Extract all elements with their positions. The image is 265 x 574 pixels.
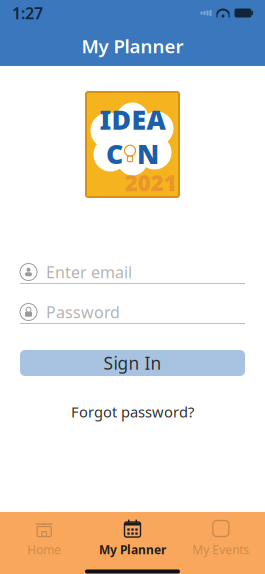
staticText: Password <box>46 301 120 323</box>
staticText: My Planner <box>99 541 166 557</box>
staticText: IDEA <box>99 102 165 137</box>
button[interactable]: Sign In <box>20 350 245 376</box>
button[interactable]: My Planner <box>88 515 177 561</box>
staticText: My Planner <box>81 34 183 58</box>
staticText: N <box>137 136 159 171</box>
staticText: Home <box>27 541 61 557</box>
staticText: Forgot password? <box>71 402 194 421</box>
button[interactable]: Forgot password? <box>63 398 202 425</box>
staticText: 1:27 <box>12 2 43 24</box>
staticText: C <box>106 136 123 171</box>
staticText: Enter email <box>46 261 132 283</box>
staticText: 2021 <box>124 167 176 197</box>
staticText: My Events <box>192 541 249 557</box>
button[interactable]: My Events <box>177 515 265 561</box>
staticText: Sign In <box>103 351 161 374</box>
button[interactable]: Home <box>0 515 88 561</box>
